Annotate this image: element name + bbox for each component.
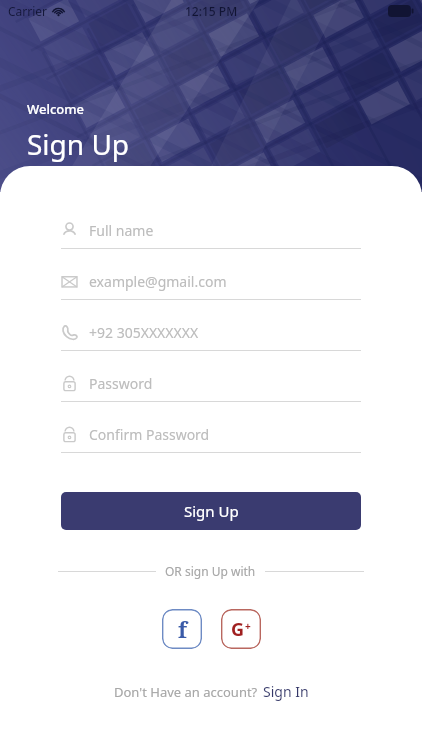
staticText: Password	[89, 374, 153, 393]
staticText: G	[231, 617, 245, 642]
staticText: Sign In	[263, 682, 309, 701]
button[interactable]: Sign Up	[61, 492, 361, 530]
staticText: +	[245, 619, 251, 633]
staticText: Full name	[89, 221, 154, 240]
button[interactable]: Sign up with Google	[221, 609, 261, 649]
staticText: Don't Have an account?	[114, 683, 258, 701]
staticText: Sign Up	[27, 125, 130, 163]
button[interactable]: Password	[61, 365, 361, 416]
button[interactable]: +92 305XXXXXXX	[61, 314, 361, 365]
button[interactable]: Sign up with Facebook	[162, 609, 202, 649]
staticText: example@gmail.com	[89, 272, 227, 291]
button[interactable]: example@gmail.com	[61, 263, 361, 314]
button[interactable]: Full name	[61, 212, 361, 263]
button[interactable]: Confirm Password	[61, 416, 361, 467]
staticText: Confirm Password	[89, 425, 210, 444]
button[interactable]: Sign In	[263, 682, 309, 701]
staticText: Sign Up	[184, 501, 239, 521]
staticText: +92 305XXXXXXX	[89, 323, 199, 342]
staticText: 12:15 PM	[185, 3, 238, 19]
staticText: Carrier	[8, 3, 48, 19]
staticText: f	[178, 614, 187, 644]
staticText: Welcome	[27, 100, 85, 118]
staticText: OR sign Up with	[165, 563, 256, 579]
